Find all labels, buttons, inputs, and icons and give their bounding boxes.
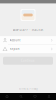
- staticText: Report: [10, 47, 20, 51]
- button[interactable]: Saved: [28, 93, 42, 100]
- staticText: Terms & Privacy: [18, 87, 37, 90]
- button[interactable]: Report: [0, 45, 56, 53]
- button[interactable]: Account: [0, 36, 56, 44]
- button[interactable]: Search: [14, 93, 28, 100]
- staticText: Account: [10, 38, 21, 42]
- button[interactable]: Profile: [42, 93, 56, 100]
- button[interactable]: Home: [0, 93, 14, 100]
- staticText: SAMPLE APP · TRACKER: [12, 28, 43, 32]
- button[interactable]: Continue: [0, 57, 56, 65]
